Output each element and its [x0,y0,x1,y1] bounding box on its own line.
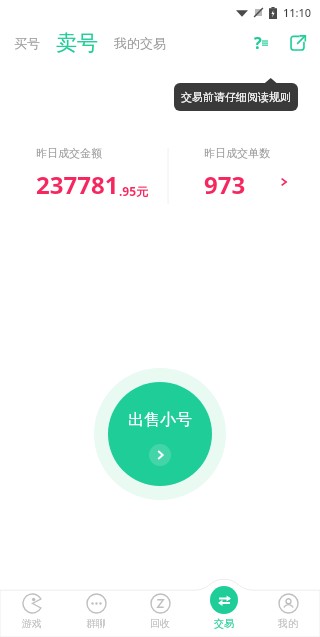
button[interactable]: 我的交易 [112,31,168,55]
staticText: 买号 [14,35,40,51]
button[interactable]: 出售小号 [94,368,226,500]
staticText: 我的 [278,617,298,630]
staticText: 交易前请仔细阅读规则 [181,90,291,104]
staticText: 973 [204,168,246,201]
button[interactable]: 群聊 [64,577,128,637]
staticText: 回收 [150,617,170,630]
button[interactable]: 回收 [128,577,192,637]
button[interactable]: 交易 [192,577,256,637]
staticText: ? [254,32,262,54]
button[interactable]: 卖号 [54,28,100,58]
staticText: 群聊 [86,617,106,630]
staticText: 237781 [36,168,119,201]
button[interactable]: 我的 [256,577,320,637]
staticText: 昨日成交单数 [204,146,270,160]
staticText: 11:10 [283,5,312,20]
staticText: 卖号 [56,30,98,56]
button[interactable]: 分享 [284,30,310,56]
button[interactable]: 帮助 [248,30,274,56]
staticText: 游戏 [22,617,42,630]
button[interactable]: 昨日成交单数 [204,146,290,201]
staticText: 昨日成交金额 [36,146,102,160]
staticText: .95元 [119,183,149,199]
staticText: 交易 [214,617,234,630]
button[interactable]: 买号 [12,31,42,55]
button[interactable]: 游戏 [0,577,64,637]
staticText: 我的交易 [114,35,166,51]
staticText: 出售小号 [128,410,192,430]
